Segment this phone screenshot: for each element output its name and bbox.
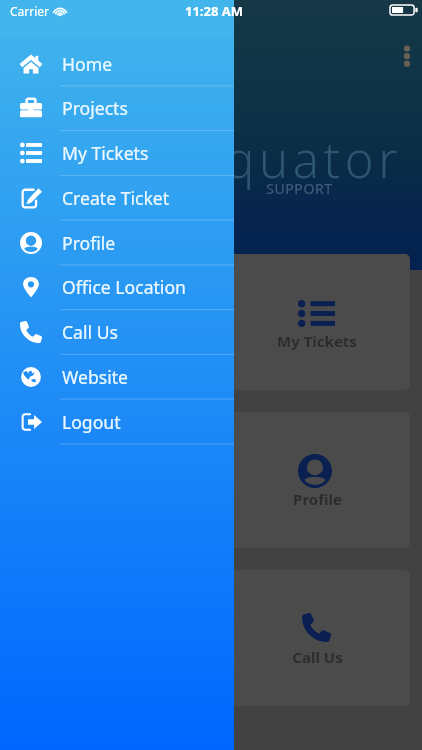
button[interactable]: Home bbox=[0, 41, 234, 86]
staticText: Create Ticket bbox=[62, 186, 170, 210]
staticText: Projects bbox=[62, 96, 128, 120]
staticText: Call Us bbox=[62, 320, 118, 344]
button[interactable]: Profile bbox=[224, 412, 410, 548]
staticText: Website bbox=[62, 365, 128, 389]
button[interactable]: Create Ticket bbox=[0, 175, 234, 220]
button[interactable]: My Tickets bbox=[224, 254, 410, 390]
staticText: Profile bbox=[293, 489, 342, 509]
button[interactable]: Website bbox=[0, 354, 234, 399]
button[interactable]: More options bbox=[395, 40, 419, 72]
button[interactable]: Call Us bbox=[224, 570, 410, 706]
staticText: My Tickets bbox=[277, 331, 357, 351]
staticText: Office Location bbox=[62, 275, 186, 299]
staticText: Call Us bbox=[292, 647, 343, 667]
button[interactable]: Call Us bbox=[0, 309, 234, 354]
staticText: Carrier bbox=[10, 3, 50, 19]
staticText: My Tickets bbox=[62, 141, 149, 165]
button[interactable]: My Tickets bbox=[0, 130, 234, 175]
button[interactable]: Office Location bbox=[0, 264, 234, 309]
staticText: Home bbox=[62, 52, 113, 76]
staticText: Profile bbox=[62, 231, 116, 255]
staticText: quator bbox=[225, 126, 403, 193]
staticText: Logout bbox=[62, 410, 121, 434]
button[interactable]: Profile bbox=[0, 220, 234, 265]
staticText: 11:28 AM bbox=[185, 2, 244, 20]
staticText: SUPPORT bbox=[266, 178, 333, 198]
button[interactable]: Logout bbox=[0, 399, 234, 444]
button[interactable]: Projects bbox=[0, 85, 234, 130]
